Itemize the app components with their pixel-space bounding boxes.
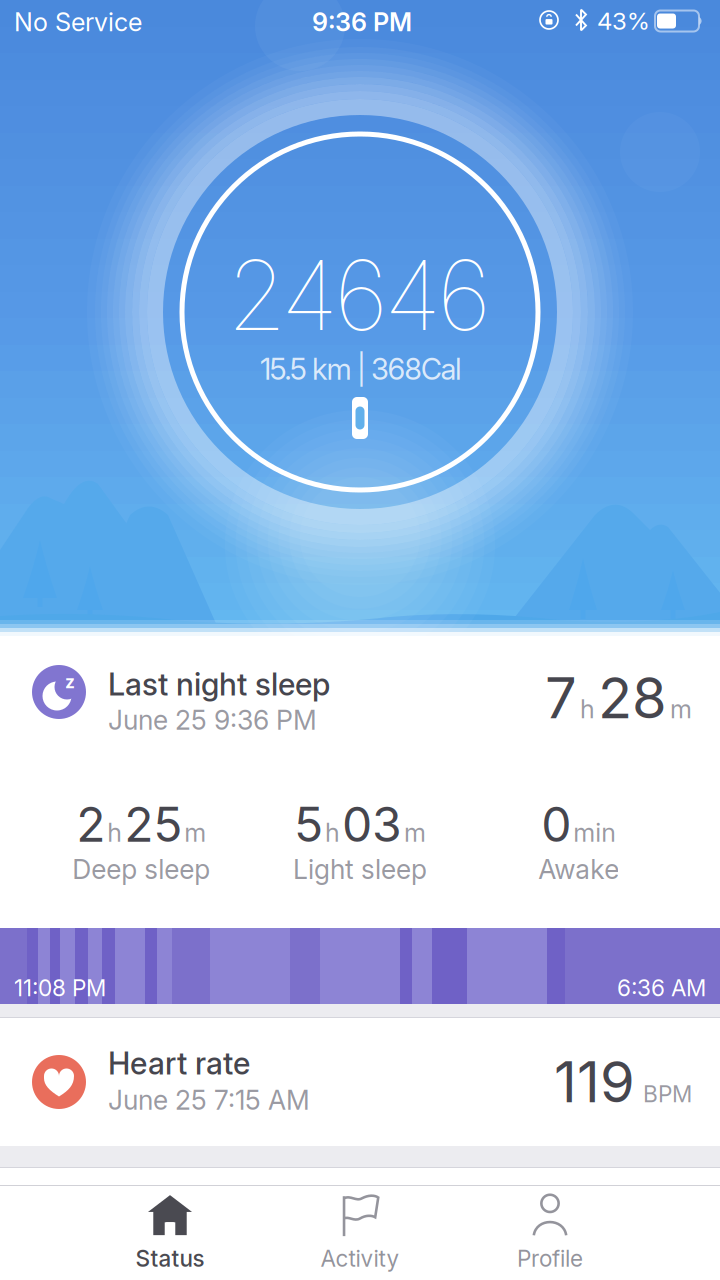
button[interactable]: z xyxy=(0,633,720,753)
staticText: 11:08 PM xyxy=(14,975,106,1001)
staticText: Light sleep xyxy=(293,854,427,885)
staticText: h xyxy=(580,694,595,724)
button[interactable]: Activity xyxy=(265,1186,455,1280)
button[interactable]: Status xyxy=(75,1186,265,1280)
staticText: 43% xyxy=(597,7,650,35)
staticText: m xyxy=(404,818,426,847)
staticText: 6:36 AM xyxy=(617,975,706,1001)
staticText: 0 xyxy=(541,796,571,853)
staticText: m xyxy=(184,818,206,847)
staticText: Status xyxy=(135,1245,204,1272)
staticText: Profile xyxy=(517,1245,583,1272)
staticText: Last night sleep xyxy=(108,666,330,702)
staticText: 03 xyxy=(342,796,402,853)
staticText: Deep sleep xyxy=(72,854,210,885)
staticText: June 25 7:15 AM xyxy=(108,1084,310,1116)
staticText: 119 xyxy=(554,1049,635,1115)
staticText: 5 xyxy=(294,796,323,853)
staticText: 7 xyxy=(545,665,577,731)
staticText: Heart rate xyxy=(108,1045,250,1081)
button[interactable]: Heart rate xyxy=(0,1018,720,1146)
staticText: 2 xyxy=(76,796,105,853)
staticText: BPM xyxy=(643,1081,692,1107)
staticText: 15.5 km | 368Cal xyxy=(260,352,462,386)
staticText: 24646 xyxy=(227,238,491,352)
staticText: h xyxy=(107,818,122,847)
staticText: June 25 9:36 PM xyxy=(108,704,317,736)
staticText: No Service xyxy=(14,7,142,37)
staticText: Activity xyxy=(320,1245,399,1272)
staticText: h xyxy=(325,818,340,847)
staticText: z xyxy=(65,672,75,692)
staticText: m xyxy=(670,694,692,724)
staticText: 9:36 PM xyxy=(312,7,412,37)
button[interactable]: Profile xyxy=(455,1186,645,1280)
staticText: Awake xyxy=(538,854,619,885)
staticText: 25 xyxy=(124,796,182,853)
staticText: 28 xyxy=(598,665,667,731)
staticText: min xyxy=(573,818,616,847)
